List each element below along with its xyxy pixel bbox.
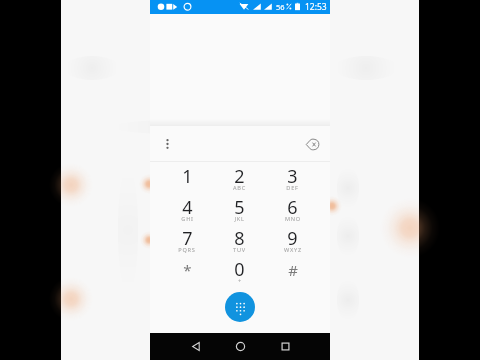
staticText: 56 (276, 2, 285, 12)
button[interactable]: Home (218, 333, 263, 360)
staticText: 12:53 (305, 1, 327, 13)
staticText: * (183, 260, 192, 280)
button[interactable]: 1 (161, 162, 213, 193)
staticText: 9 (287, 226, 298, 251)
button[interactable]: 5 (213, 193, 266, 224)
button[interactable]: * (161, 255, 213, 286)
staticText: 5 (234, 195, 245, 220)
button[interactable]: Backspace (303, 135, 321, 153)
staticText: 7 (182, 226, 193, 251)
staticText: DEF (286, 184, 299, 192)
button[interactable]: 6 (266, 193, 319, 224)
staticText: 6 (287, 195, 298, 220)
staticText: 3 (287, 164, 298, 189)
button[interactable]: 9 (266, 224, 319, 255)
button[interactable]: # (266, 255, 319, 286)
staticText: 0 (234, 257, 245, 282)
button[interactable]: 8 (213, 224, 266, 255)
staticText: WXYZ (284, 246, 302, 254)
staticText: + (238, 277, 242, 285)
staticText: TUV (233, 246, 246, 254)
button[interactable]: 2 (213, 162, 266, 193)
staticText: 2 (234, 164, 245, 189)
button[interactable]: More options (158, 135, 176, 153)
button[interactable]: Dialpad (225, 292, 255, 322)
staticText: 8 (234, 226, 245, 251)
button[interactable]: 0 (213, 255, 266, 286)
staticText: # (288, 260, 298, 280)
staticText: JKL (234, 215, 245, 223)
staticText: MNO (285, 215, 301, 223)
button[interactable]: 4 (161, 193, 213, 224)
staticText: 4 (182, 195, 193, 220)
staticText: ABC (233, 184, 246, 192)
button[interactable]: Back (173, 333, 218, 360)
staticText: GHI (181, 215, 194, 223)
button[interactable]: 3 (266, 162, 319, 193)
staticText: PQRS (178, 246, 196, 254)
staticText: 1 (182, 164, 193, 189)
button[interactable]: 7 (161, 224, 213, 255)
button[interactable]: Recents (263, 333, 308, 360)
